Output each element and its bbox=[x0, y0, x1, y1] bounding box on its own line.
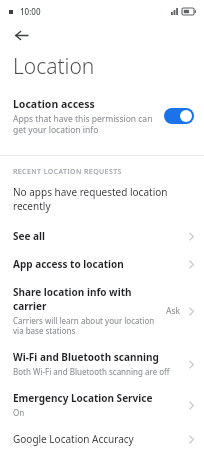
staticText: Share location info with carrier bbox=[13, 285, 166, 313]
button[interactable]: Share location info with carrier bbox=[0, 278, 204, 343]
staticText: Google Location Accuracy bbox=[13, 432, 134, 446]
button[interactable]: Wi-Fi and Bluetooth scanning bbox=[0, 343, 204, 384]
staticText: RECENT LOCATION REQUESTS bbox=[13, 167, 122, 177]
staticText: App access to location bbox=[13, 257, 124, 271]
staticText: Location bbox=[13, 52, 95, 81]
staticText: No apps have requested location recently bbox=[13, 185, 196, 213]
button[interactable]: Location access toggle bbox=[164, 108, 194, 124]
button[interactable]: Google Location Accuracy bbox=[0, 425, 204, 453]
button[interactable]: Back bbox=[8, 22, 34, 48]
button[interactable]: Location access bbox=[0, 91, 204, 141]
staticText: Apps that have this permission can get y… bbox=[13, 113, 158, 135]
staticText: Ask bbox=[166, 305, 181, 317]
button[interactable]: Emergency Location Service bbox=[0, 384, 204, 425]
staticText: Location access bbox=[13, 97, 95, 111]
staticText: On bbox=[13, 407, 25, 418]
staticText: 10:00 bbox=[20, 6, 41, 17]
staticText: Emergency Location Service bbox=[13, 391, 153, 405]
button[interactable]: App access to location bbox=[0, 250, 204, 278]
button[interactable]: See all bbox=[0, 222, 204, 250]
staticText: Carriers will learn about your location … bbox=[13, 315, 166, 336]
staticText: Both Wi-Fi and Bluetooth scanning are of… bbox=[13, 366, 170, 377]
staticText: See all bbox=[13, 229, 45, 243]
staticText: Wi-Fi and Bluetooth scanning bbox=[13, 350, 159, 364]
